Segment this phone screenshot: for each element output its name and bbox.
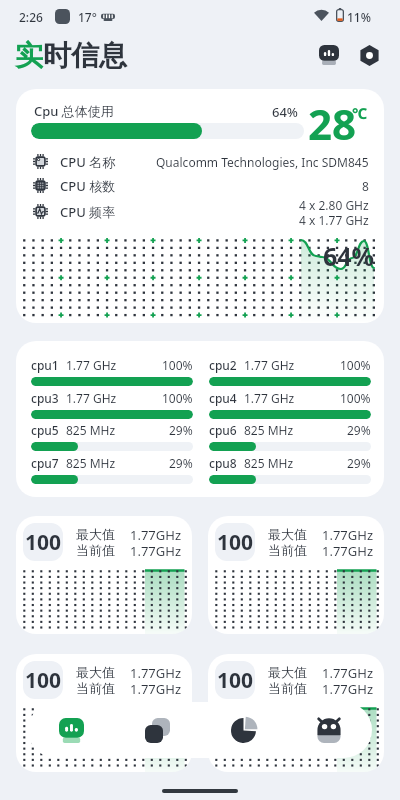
staticText: 28 <box>308 95 357 152</box>
button[interactable]: 100 <box>16 516 192 634</box>
button[interactable]: Apps <box>114 702 200 758</box>
staticText: 64% <box>323 239 375 273</box>
staticText: 1.77GHz <box>130 526 181 544</box>
staticText: 825 MHz <box>66 422 116 438</box>
staticText: cpu2 <box>209 357 237 373</box>
staticText: cpu1 <box>31 357 59 373</box>
staticText: 11% <box>347 9 371 25</box>
staticText: 1.77GHz <box>322 680 373 698</box>
staticText: 4 x 2.80 GHz <box>299 197 369 213</box>
button[interactable]: Realtime <box>28 702 114 758</box>
button[interactable]: System <box>286 702 372 758</box>
staticText: cpu4 <box>209 390 237 406</box>
staticText: 825 MHz <box>66 455 116 471</box>
staticText: cpu7 <box>31 455 59 471</box>
staticText: CPU 名称 <box>60 153 116 171</box>
staticText: 4 x 1.77 GHz <box>299 212 369 228</box>
staticText: cpu5 <box>31 422 59 438</box>
staticText: 1.77 GHz <box>66 357 117 373</box>
staticText: CPU 核数 <box>60 177 116 195</box>
staticText: 1.77GHz <box>130 542 181 560</box>
staticText: 2:26 <box>19 9 43 25</box>
button[interactable]: 100 <box>208 654 384 772</box>
staticText: 实 <box>15 38 43 73</box>
button[interactable]: Cpu 总体使用 <box>16 89 384 323</box>
button[interactable]: Monitor <box>314 40 344 70</box>
staticText: 100% <box>162 357 193 373</box>
staticText: Cpu 总体使用 <box>34 102 114 120</box>
staticText: 当前值 <box>76 680 115 696</box>
staticText: 最大值 <box>76 664 115 680</box>
staticText: cpu3 <box>31 390 59 406</box>
staticText: 825 MHz <box>244 455 294 471</box>
button[interactable]: cpu1 <box>16 341 384 497</box>
staticText: 1.77 GHz <box>66 390 117 406</box>
staticText: 100% <box>340 390 371 406</box>
staticText: cpu8 <box>209 455 237 471</box>
staticText: 64% <box>272 103 298 121</box>
staticText: 最大值 <box>76 526 115 542</box>
staticText: Qualcomm Technologies, Inc SDM845 <box>156 154 369 170</box>
staticText: 当前值 <box>268 680 307 696</box>
staticText: 最大值 <box>268 664 307 680</box>
staticText: 100 <box>25 666 62 695</box>
staticText: 100 <box>217 666 254 695</box>
staticText: 1.77GHz <box>130 664 181 682</box>
staticText: 1.77GHz <box>130 680 181 698</box>
staticText: 100 <box>217 528 254 557</box>
button[interactable]: 100 <box>208 516 384 634</box>
staticText: 1.77GHz <box>322 526 373 544</box>
button[interactable]: 100 <box>16 654 192 772</box>
staticText: 时信息 <box>43 38 127 73</box>
staticText: 8 <box>362 178 369 194</box>
staticText: 825 MHz <box>244 422 294 438</box>
staticText: 1.77GHz <box>322 542 373 560</box>
staticText: 100 <box>25 528 62 557</box>
staticText: 最大值 <box>268 526 307 542</box>
staticText: 29% <box>347 455 371 471</box>
staticText: CPU 频率 <box>60 203 116 221</box>
staticText: ℃ <box>352 103 368 123</box>
staticText: 当前值 <box>76 542 115 558</box>
staticText: 29% <box>169 422 193 438</box>
button[interactable]: Stats <box>200 702 286 758</box>
staticText: 17° <box>78 9 97 25</box>
staticText: 100% <box>340 357 371 373</box>
staticText: 1.77GHz <box>322 664 373 682</box>
staticText: 当前值 <box>268 542 307 558</box>
staticText: 29% <box>169 455 193 471</box>
staticText: 29% <box>347 422 371 438</box>
staticText: cpu6 <box>209 422 237 438</box>
staticText: 1.77 GHz <box>244 390 295 406</box>
staticText: 100% <box>162 390 193 406</box>
staticText: 1.77 GHz <box>244 357 295 373</box>
button[interactable]: Settings <box>354 40 384 70</box>
